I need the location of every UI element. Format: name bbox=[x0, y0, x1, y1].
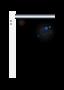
button[interactable] bbox=[9, 11, 16, 78]
other: Highlight bbox=[15, 14, 55, 19]
